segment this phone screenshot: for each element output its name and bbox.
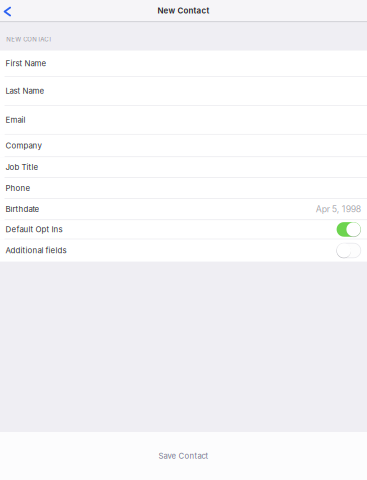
button[interactable]: First Name: [0, 51, 367, 77]
staticText: NEW CONTACT: [6, 36, 52, 43]
staticText: Phone: [5, 183, 30, 193]
button[interactable]: Company: [0, 135, 367, 157]
staticText: New Contact: [157, 6, 209, 15]
staticText: Last Name: [5, 86, 44, 96]
staticText: Default Opt Ins: [5, 225, 62, 234]
button[interactable]: Default Opt Ins: [0, 220, 367, 239]
staticText: Additional fields: [5, 246, 66, 255]
staticText: Email: [5, 115, 25, 125]
button[interactable]: Email: [0, 106, 367, 135]
button[interactable]: Save Contact: [0, 432, 367, 480]
staticText: Birthdate: [5, 204, 39, 214]
staticText: Company: [5, 141, 41, 150]
staticText: Apr 5, 1998: [316, 204, 361, 214]
button[interactable]: Job Title: [0, 157, 367, 178]
staticText: Save Contact: [158, 451, 208, 461]
button[interactable]: Back: [0, 0, 18, 21]
staticText: Job Title: [5, 162, 38, 172]
button[interactable]: Additional fields: [0, 239, 367, 262]
button[interactable]: Birthdate: [0, 199, 367, 220]
button[interactable]: Last Name: [0, 77, 367, 106]
button[interactable]: Phone: [0, 178, 367, 199]
staticText: First Name: [5, 59, 46, 68]
